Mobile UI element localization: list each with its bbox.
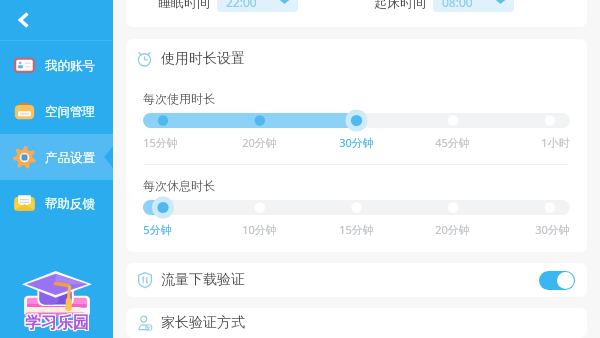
staticText: 我的账号 (45, 58, 95, 74)
staticText: 帮助反馈 (45, 196, 95, 212)
staticText: 08:00 (442, 0, 473, 10)
staticText: 学习乐园 (25, 314, 89, 334)
staticText: 5分钟 (143, 222, 172, 237)
button[interactable]: 家长验证方式 (126, 308, 587, 338)
button[interactable]: 我的账号 (0, 42, 113, 88)
button[interactable]: 帮助反馈 (0, 180, 113, 226)
staticText: 学习乐园 (26, 313, 90, 333)
staticText: 家长验证方式 (161, 314, 245, 332)
staticText: 学习乐园 (26, 314, 90, 334)
staticText: 1小时 (541, 135, 570, 150)
staticText: 使用时长设置 (161, 50, 245, 67)
staticText: 起床时间 (374, 0, 426, 10)
button[interactable]: 22:00 (217, 0, 298, 12)
button[interactable]: 流量下载验证 (126, 263, 587, 297)
staticText: 15分钟 (143, 135, 178, 150)
staticText: 学习乐园 (25, 312, 89, 332)
staticText: 22:00 (226, 0, 257, 10)
staticText: 10分钟 (242, 222, 277, 237)
staticText: 每次使用时长 (143, 91, 215, 106)
staticText: 流量下载验证 (161, 271, 245, 289)
staticText: 学习乐园 (24, 313, 88, 333)
button[interactable]: Back (0, 0, 113, 40)
staticText: 30分钟 (339, 135, 374, 150)
staticText: 空间管理 (45, 104, 95, 120)
button[interactable]: Toggle traffic download verification (539, 271, 575, 290)
staticText: 20分钟 (435, 222, 470, 237)
staticText: 睡眠时间 (158, 0, 210, 10)
staticText: 产品设置 (45, 150, 95, 166)
button[interactable]: 08:00 (433, 0, 514, 12)
staticText: 学习乐园 (26, 312, 90, 332)
button[interactable]: 产品设置 (0, 134, 113, 180)
button[interactable]: 空间管理 (0, 88, 113, 134)
staticText: 20分钟 (242, 135, 277, 150)
staticText: 学习乐园 (24, 314, 88, 334)
staticText: 30分钟 (535, 222, 570, 237)
staticText: 45分钟 (435, 135, 470, 150)
staticText: 每次休息时长 (143, 178, 215, 193)
staticText: 学习乐园 (24, 312, 88, 332)
staticText: 15分钟 (339, 222, 374, 237)
staticText: 学习乐园 (25, 313, 89, 333)
